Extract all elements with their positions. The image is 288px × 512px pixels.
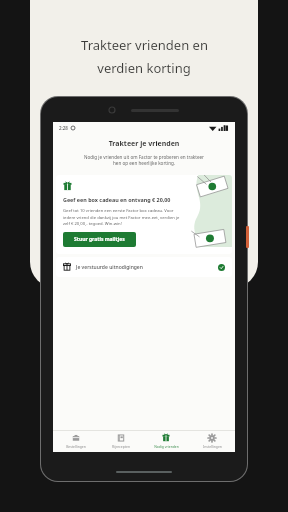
button[interactable]: Instellingen: [189, 431, 235, 452]
staticText: Instellingen: [203, 444, 222, 449]
staticText: Rijrecepten: [112, 444, 130, 449]
staticText: Stuur gratis mailtjes: [74, 236, 125, 243]
button[interactable]: Je verstuurde uitnodigingen: [56, 257, 232, 277]
staticText: 2:28: [59, 125, 68, 131]
staticText: Trakteer je vrienden: [53, 139, 235, 149]
staticText: Trakteer vrienden en: [81, 36, 208, 54]
button[interactable]: Nodig vrienden: [143, 431, 189, 452]
staticText: Bestellingen: [66, 444, 86, 449]
staticText: Nodig je vrienden uit om Factor te probe…: [67, 154, 221, 167]
staticText: Geef tot 10 vrienden een eerste Factor b…: [63, 208, 186, 226]
button[interactable]: Stuur gratis mailtjes: [63, 232, 136, 247]
button[interactable]: Geef een box cadeau en ontvang € 20,00: [56, 175, 232, 254]
button[interactable]: Rijrecepten: [98, 431, 143, 452]
staticText: Je verstuurde uitnodigingen: [76, 264, 143, 271]
staticText: verdien korting: [97, 59, 191, 77]
staticText: Geef een box cadeau en ontvang € 20,00: [63, 196, 171, 203]
button[interactable]: Bestellingen: [53, 431, 98, 452]
staticText: Nodig vrienden: [154, 444, 179, 449]
